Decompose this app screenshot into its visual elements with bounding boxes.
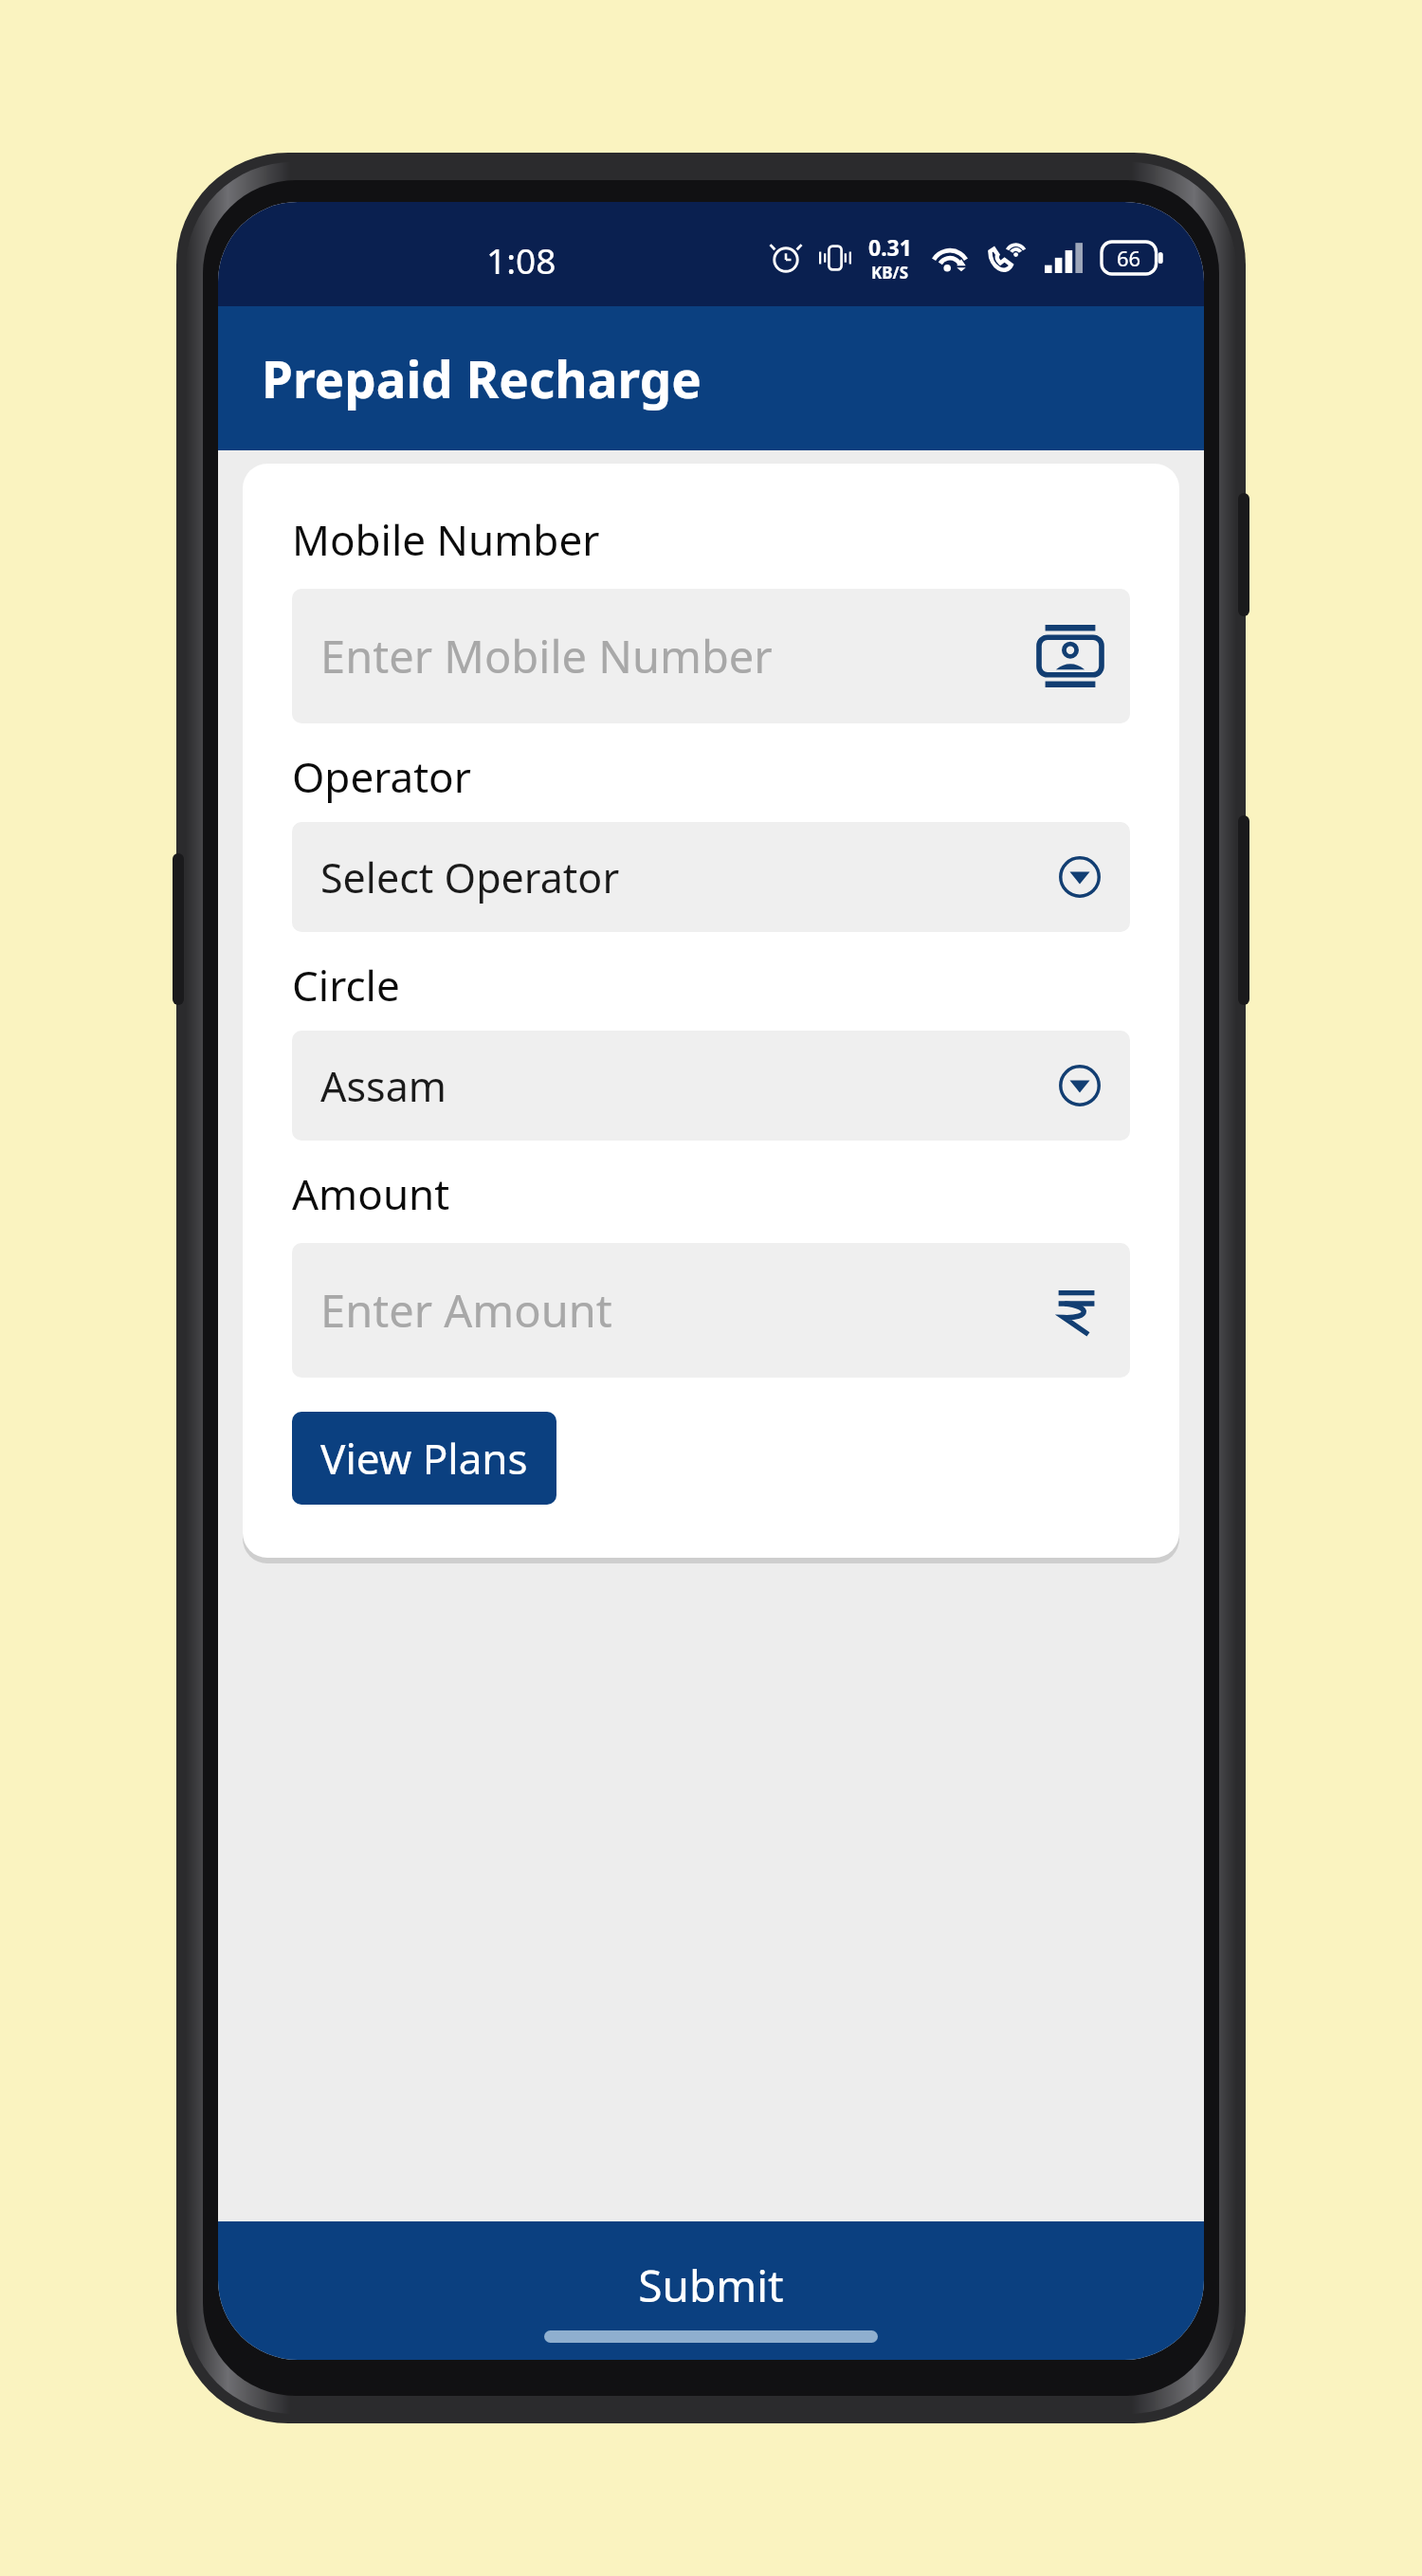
staticText: Operator [292,748,471,805]
other: Enter Amount [1050,1285,1102,1336]
staticText: Amount [292,1165,450,1222]
other: Enter Mobile Number [1039,625,1102,687]
staticText: KB/S [871,262,909,283]
staticText: 66 [1117,244,1141,272]
staticText: View Plans [320,1430,528,1487]
other: Select Operator [1058,855,1102,899]
button[interactable]: View Plans [292,1412,556,1505]
staticText: Enter Mobile Number [320,626,1039,686]
staticText: Select Operator [320,850,1058,905]
button[interactable]: Enter Amount [292,1243,1130,1378]
other: Assam [1058,1064,1102,1107]
staticText: Submit [638,2256,784,2315]
staticText: Enter Amount [320,1280,1050,1341]
staticText: Mobile Number [292,511,600,568]
button[interactable]: Submit [218,2221,1204,2360]
staticText: Circle [292,957,400,1014]
staticText: Prepaid Recharge [262,344,702,412]
staticText: 0.31 [868,232,912,262]
staticText: 1:08 [486,236,556,283]
button[interactable]: Enter Mobile Number [292,589,1130,723]
button[interactable]: Assam [292,1031,1130,1141]
staticText: Assam [320,1058,1058,1114]
button[interactable]: Select Operator [292,822,1130,932]
